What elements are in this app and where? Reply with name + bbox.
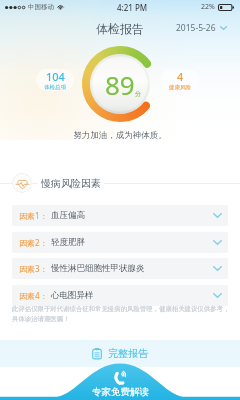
button[interactable]: 专家免费解读: [92, 370, 149, 400]
staticText: 因素4：: [19, 290, 48, 301]
button[interactable]: 2015-5-26: [176, 22, 227, 34]
staticText: 89: [105, 67, 135, 102]
button[interactable]: 因素3：: [12, 258, 228, 279]
staticText: 慢病风险因素: [41, 177, 101, 190]
staticText: 此评估仅限于对代谢综合征和常见慢病的风险管理，健康相关建议仅供参考，: [12, 305, 230, 313]
staticText: 专家免费解读: [92, 386, 149, 398]
staticText: 4: [177, 69, 184, 84]
staticText: 因素2：: [19, 237, 48, 248]
staticText: 慢性淋巴细胞性甲状腺炎: [51, 263, 145, 274]
button[interactable]: 因素2：: [12, 232, 228, 253]
button[interactable]: 因素4：: [12, 285, 228, 306]
staticText: 中国移动: [28, 3, 54, 11]
staticText: 完整报告: [108, 347, 148, 360]
staticText: 心电图异样: [51, 290, 94, 301]
staticText: 轻度肥胖: [51, 237, 85, 248]
staticText: 4:21 PM: [117, 2, 148, 13]
staticText: 体检总项: [44, 84, 66, 91]
button[interactable]: 完整报告: [82, 344, 158, 363]
staticText: 22%: [201, 2, 215, 12]
staticText: 2015-5-26: [176, 22, 216, 34]
staticText: 体检报告: [96, 21, 144, 36]
staticText: 具体诊治请遵医嘱！: [12, 315, 70, 323]
staticText: 血压偏高: [51, 210, 85, 221]
staticText: 因素3：: [19, 263, 48, 274]
staticText: 分: [135, 90, 141, 98]
staticText: 健康风险: [169, 84, 191, 91]
button[interactable]: 因素1：: [12, 205, 228, 226]
staticText: 104: [46, 69, 65, 84]
staticText: 因素1：: [19, 210, 48, 221]
staticText: 努力加油，成为神体质。: [0, 130, 240, 141]
